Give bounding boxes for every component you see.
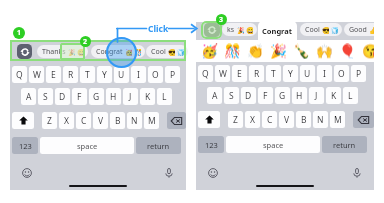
button[interactable]: H [292, 87, 307, 104]
button[interactable]: F [258, 87, 273, 104]
staticText: 🎊 [134, 49, 141, 56]
button[interactable]: Z [228, 111, 243, 128]
button[interactable]: N [127, 112, 142, 129]
button[interactable]: 🎊 [224, 43, 240, 59]
button[interactable]: N [313, 111, 328, 128]
button[interactable]: B [110, 112, 125, 129]
button[interactable]: C [262, 111, 277, 128]
button[interactable]: V [93, 112, 108, 129]
button[interactable]: space [40, 137, 134, 154]
button[interactable]: Refresh suggestions [17, 44, 32, 59]
button[interactable]: U [300, 65, 315, 82]
button[interactable]: E [232, 65, 247, 82]
staticText: Y [288, 68, 293, 80]
staticText: 🍾 [293, 43, 309, 59]
staticText: 🥳 [201, 43, 217, 59]
button[interactable]: 🙌 [316, 43, 332, 59]
button[interactable]: L [157, 88, 172, 105]
staticText: ks [227, 25, 235, 35]
button[interactable]: Thanks [37, 45, 88, 58]
button[interactable]: K [326, 87, 341, 104]
staticText: T [85, 69, 90, 81]
button[interactable]: X [245, 111, 260, 128]
button[interactable]: Z [42, 112, 57, 129]
button[interactable]: F [72, 88, 87, 105]
button[interactable]: 😘 [362, 43, 374, 59]
button[interactable]: Cool [300, 23, 342, 36]
button[interactable]: space [226, 136, 320, 153]
staticText: space [263, 140, 284, 150]
button[interactable]: ks [222, 23, 257, 36]
button[interactable]: V [279, 111, 294, 128]
button[interactable]: J [123, 88, 138, 105]
button[interactable]: Backspace [167, 112, 186, 129]
button[interactable]: I [131, 66, 146, 83]
button[interactable]: Congrat [258, 21, 297, 40]
staticText: space [77, 141, 98, 151]
button[interactable]: G [89, 88, 104, 105]
button[interactable]: 123 [198, 136, 224, 153]
button[interactable]: Congrat [91, 45, 145, 58]
button[interactable]: Q [198, 65, 213, 82]
button[interactable]: 🎈 [339, 43, 355, 59]
button[interactable]: S [224, 87, 239, 104]
button[interactable]: D [55, 88, 70, 105]
staticText: Z [47, 115, 52, 127]
button[interactable]: H [106, 88, 121, 105]
button[interactable]: K [140, 88, 155, 105]
button[interactable]: A [21, 88, 36, 105]
button[interactable]: W [29, 66, 44, 83]
button[interactable]: L [343, 87, 358, 104]
button[interactable]: Emoji keyboard [208, 168, 218, 178]
staticText: Congrat [96, 47, 123, 57]
button[interactable]: O [334, 65, 349, 82]
button[interactable]: T [266, 65, 281, 82]
button[interactable]: Shift [12, 112, 34, 129]
button[interactable]: S [38, 88, 53, 105]
button[interactable]: 🍾 [293, 43, 309, 59]
button[interactable]: W [215, 65, 230, 82]
button[interactable]: C [76, 112, 91, 129]
button[interactable]: D [241, 87, 256, 104]
staticText: E [237, 68, 242, 80]
button[interactable]: return [322, 136, 367, 153]
button[interactable]: R [63, 66, 78, 83]
button[interactable]: O [148, 66, 163, 83]
button[interactable]: M [330, 111, 345, 128]
button[interactable]: Refresh suggestions [204, 23, 220, 37]
button[interactable]: Dictation [164, 168, 174, 178]
button[interactable]: I [317, 65, 332, 82]
button[interactable]: Emoji keyboard [22, 168, 32, 178]
button[interactable]: U [114, 66, 129, 83]
button[interactable]: Dictation [352, 168, 362, 178]
staticText: G [93, 91, 100, 103]
button[interactable]: Good [344, 23, 380, 36]
button[interactable]: A [207, 87, 222, 104]
button[interactable]: B [296, 111, 311, 128]
button[interactable]: X [59, 112, 74, 129]
button[interactable]: G [275, 87, 290, 104]
staticText: W [219, 68, 227, 80]
staticText: 123 [19, 141, 32, 151]
button[interactable]: P [165, 66, 180, 83]
button[interactable]: 🥳 [201, 43, 217, 59]
button[interactable]: M [144, 112, 159, 129]
button[interactable]: return [136, 137, 181, 154]
button[interactable]: Y [283, 65, 298, 82]
button[interactable]: R [249, 65, 264, 82]
button[interactable]: Q [12, 66, 27, 83]
button[interactable]: 🎉 [270, 43, 286, 59]
staticText: L [348, 90, 353, 102]
button[interactable]: Shift [198, 111, 220, 128]
staticText: I [323, 68, 326, 80]
button[interactable]: Cool [146, 45, 188, 58]
staticText: R [254, 68, 260, 80]
button[interactable]: 123 [12, 137, 38, 154]
button[interactable]: J [309, 87, 324, 104]
button[interactable]: 👏 [247, 43, 263, 59]
button[interactable]: T [80, 66, 95, 83]
button[interactable]: E [46, 66, 61, 83]
button[interactable]: P [351, 65, 366, 82]
button[interactable]: Backspace [353, 111, 374, 128]
button[interactable]: Y [97, 66, 112, 83]
